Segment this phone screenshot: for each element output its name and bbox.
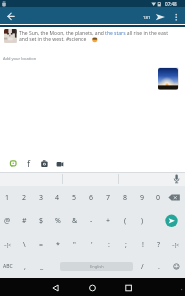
button[interactable]: ~[<: [167, 233, 184, 256]
button[interactable]: -: [83, 209, 100, 232]
button[interactable]: +: [100, 209, 117, 232]
button[interactable]: [55, 158, 65, 169]
button[interactable]: $: [33, 209, 50, 232]
button[interactable]: ABC: [0, 255, 16, 278]
button[interactable]: [40, 158, 50, 169]
button[interactable]: ': [83, 233, 100, 256]
staticText: +: [106, 216, 111, 226]
button[interactable]: [168, 189, 185, 206]
staticText: ,: [24, 262, 26, 272]
button[interactable]: 5: [66, 186, 83, 209]
staticText: ABC: [3, 263, 13, 270]
button[interactable]: *: [49, 233, 66, 256]
button[interactable]: 2: [16, 186, 33, 209]
button[interactable]: [8, 158, 18, 169]
staticText: !: [142, 240, 144, 250]
button[interactable]: 9: [134, 186, 151, 209]
button[interactable]: .: [150, 255, 167, 278]
button[interactable]: #: [16, 209, 33, 232]
staticText: :: [108, 240, 110, 250]
staticText: ~[<: [172, 242, 179, 248]
staticText: 9: [140, 193, 145, 203]
staticText: $: [39, 216, 44, 226]
staticText: ": [73, 240, 76, 250]
button[interactable]: [170, 172, 185, 186]
staticText: =: [39, 240, 44, 250]
button[interactable]: ": [66, 233, 83, 256]
staticText: ?: [157, 240, 161, 250]
button[interactable]: _: [33, 255, 50, 278]
button[interactable]: 3: [33, 186, 50, 209]
button[interactable]: (: [117, 209, 134, 232]
staticText: 3: [39, 193, 44, 203]
staticText: The Sun, the Moon, the planets, and the …: [19, 30, 168, 37]
staticText: 1: [5, 193, 10, 203]
staticText: -: [90, 216, 93, 226]
button[interactable]: [163, 214, 180, 231]
button[interactable]: %: [49, 209, 66, 232]
staticText: 0: [156, 193, 161, 203]
button[interactable]: ,: [16, 255, 33, 278]
staticText: ;: [125, 240, 127, 250]
staticText: 07:48: [165, 1, 177, 7]
staticText: *: [56, 240, 60, 250]
button[interactable]: =: [33, 233, 50, 256]
button[interactable]: :: [100, 233, 117, 256]
staticText: 7: [106, 193, 111, 203]
staticText: ): [141, 216, 144, 226]
staticText: and set in the west. #science: [19, 36, 87, 43]
staticText: %: [55, 216, 61, 226]
button[interactable]: 0: [150, 186, 167, 209]
staticText: f: [27, 157, 31, 169]
button[interactable]: [117, 280, 139, 295]
staticText: 6: [89, 193, 94, 203]
staticText: _: [40, 262, 44, 272]
button[interactable]: ~[<: [0, 233, 16, 256]
staticText: ': [91, 240, 93, 250]
button[interactable]: [170, 10, 183, 23]
button[interactable]: 7: [100, 186, 117, 209]
button[interactable]: 8: [117, 186, 134, 209]
button[interactable]: /: [134, 255, 151, 278]
button[interactable]: 6: [83, 186, 100, 209]
button[interactable]: 4: [49, 186, 66, 209]
button[interactable]: [2, 53, 42, 63]
staticText: ~[<: [4, 242, 11, 248]
button[interactable]: 1: [0, 186, 16, 209]
button[interactable]: ): [134, 209, 151, 232]
staticText: \: [23, 240, 26, 250]
button[interactable]: [24, 158, 34, 169]
button[interactable]: @: [0, 209, 16, 232]
button[interactable]: !: [134, 233, 151, 256]
button[interactable]: &: [66, 209, 83, 232]
button[interactable]: [4, 29, 17, 43]
button[interactable]: [169, 259, 184, 274]
button[interactable]: [81, 280, 103, 295]
button[interactable]: [3, 9, 19, 23]
staticText: 5: [72, 193, 77, 203]
staticText: English: [90, 264, 104, 269]
staticText: #: [22, 216, 27, 226]
staticText: 2: [22, 193, 27, 203]
staticText: (: [124, 216, 127, 226]
staticText: 4: [55, 193, 60, 203]
staticText: 8: [123, 193, 128, 203]
staticText: 181: [143, 14, 151, 20]
button[interactable]: [158, 68, 178, 90]
button[interactable]: [151, 10, 169, 23]
staticText: .: [158, 262, 160, 272]
staticText: @: [4, 216, 11, 226]
button[interactable]: ;: [117, 233, 134, 256]
button[interactable]: English: [60, 262, 133, 271]
staticText: /: [141, 262, 144, 272]
button[interactable]: \: [16, 233, 33, 256]
button[interactable]: ?: [150, 233, 167, 256]
staticText: &: [72, 216, 78, 226]
staticText: Add your location: [3, 56, 37, 61]
button[interactable]: [44, 280, 66, 295]
